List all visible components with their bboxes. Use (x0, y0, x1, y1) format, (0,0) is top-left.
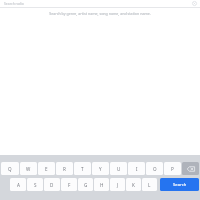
button[interactable]: T (74, 162, 91, 175)
button[interactable]: Search (160, 178, 199, 191)
button[interactable]: Clear search (192, 1, 197, 6)
staticText: L (148, 182, 151, 188)
staticText: W (26, 166, 31, 172)
staticText: Search (173, 182, 187, 188)
staticText: R (63, 166, 66, 172)
button[interactable]: I (128, 162, 145, 175)
button[interactable]: D (44, 178, 60, 191)
staticText: U (117, 166, 121, 172)
button[interactable]: E (38, 162, 55, 175)
staticText: T (81, 166, 84, 172)
button[interactable]: Y (92, 162, 109, 175)
button[interactable]: Search radio (0, 0, 200, 8)
button[interactable]: Q (1, 162, 19, 175)
staticText: Y (99, 166, 102, 172)
staticText: F (68, 182, 71, 188)
button[interactable]: Backspace (182, 162, 199, 175)
button[interactable]: K (126, 178, 141, 191)
staticText: J (117, 182, 119, 188)
staticText: H (100, 182, 104, 188)
staticText: E (45, 166, 48, 172)
staticText: A (17, 182, 20, 188)
button[interactable]: L (142, 178, 157, 191)
button[interactable]: A (10, 178, 26, 191)
staticText: K (132, 182, 135, 188)
button[interactable]: W (20, 162, 37, 175)
staticText: P (171, 166, 174, 172)
button[interactable]: P (164, 162, 181, 175)
button[interactable]: F (61, 178, 77, 191)
staticText: Search by genre, artist name, song name,… (49, 11, 151, 16)
staticText: S (34, 182, 37, 188)
staticText: G (84, 182, 88, 188)
button[interactable]: G (78, 178, 93, 191)
button[interactable]: O (146, 162, 163, 175)
button[interactable]: R (56, 162, 73, 175)
button[interactable]: H (94, 178, 109, 191)
staticText: O (153, 166, 157, 172)
staticText: D (50, 182, 54, 188)
button[interactable]: J (110, 178, 125, 191)
button[interactable]: S (27, 178, 43, 191)
staticText: Search radio (4, 1, 24, 6)
staticText: Q (8, 166, 12, 172)
button[interactable]: U (110, 162, 127, 175)
staticText: I (136, 166, 138, 172)
